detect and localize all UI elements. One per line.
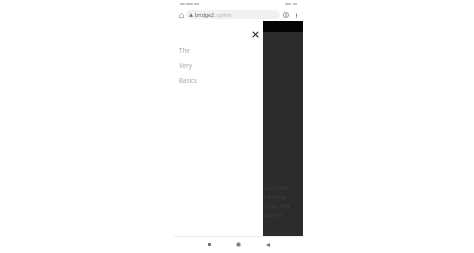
staticText: Basics — [179, 76, 197, 84]
staticText: .com/x — [215, 11, 232, 18]
button[interactable]: Back — [262, 239, 273, 250]
button[interactable]: Very — [174, 57, 263, 72]
button[interactable]: Page info — [280, 9, 291, 20]
button[interactable]: Basics — [174, 72, 263, 87]
staticText: s you find — [264, 184, 289, 191]
staticText: The — [179, 46, 190, 54]
button[interactable]: Close menu — [249, 28, 262, 41]
button[interactable]: Home — [176, 10, 186, 20]
staticText: Very — [179, 61, 192, 69]
button[interactable]: More options — [291, 10, 301, 20]
button[interactable]: bridge2 — [186, 10, 280, 19]
button[interactable]: Recent apps — [204, 239, 215, 250]
staticText: g is the — [264, 211, 283, 218]
staticText: n you find — [264, 202, 290, 209]
button[interactable]: The — [174, 42, 263, 57]
staticText: bridge2 — [195, 11, 214, 18]
button[interactable]: Home — [233, 239, 244, 250]
staticText: t writing — [264, 193, 286, 200]
